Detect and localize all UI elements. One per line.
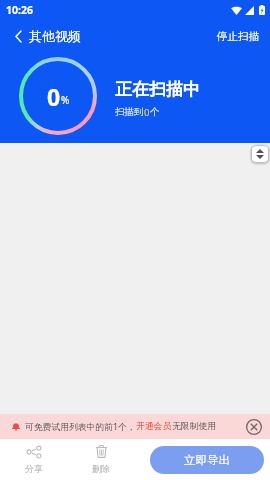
button[interactable]: 分享: [14, 439, 54, 480]
button[interactable]: 停止扫描: [206, 25, 270, 48]
staticText: 停止扫描: [217, 30, 259, 43]
staticText: 立即导出: [184, 453, 230, 467]
button[interactable]: 删除: [81, 439, 121, 480]
staticText: 删除: [92, 463, 110, 474]
staticText: %: [61, 93, 70, 107]
staticText: 扫描到: [115, 106, 144, 118]
button[interactable]: Back: [5, 24, 31, 48]
staticText: 正在扫描中: [115, 79, 200, 100]
button[interactable]: 立即导出: [150, 446, 264, 474]
staticText: 可免费试用列表中的前1个，: [25, 421, 136, 433]
staticText: 分享: [25, 463, 43, 474]
staticText: 无限制使用: [172, 421, 216, 432]
button[interactable]: Sort order: [252, 146, 268, 162]
button[interactable]: Close banner: [246, 419, 262, 435]
staticText: 0: [47, 81, 61, 112]
staticText: 其他视频: [29, 28, 81, 44]
staticText: 开通会员: [136, 421, 172, 432]
staticText: 个: [150, 106, 160, 118]
staticText: 10:26: [6, 3, 33, 17]
staticText: 0: [144, 106, 150, 119]
